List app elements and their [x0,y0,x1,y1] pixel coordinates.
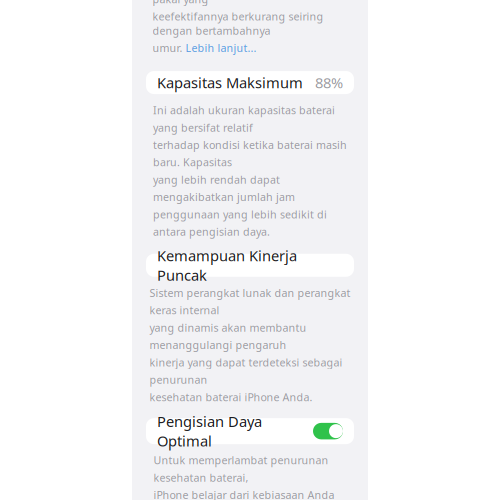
staticText: keefektifannya berkurang seiring dengan … [152,9,323,38]
staticText: Pengisian Daya Optimal [157,412,262,451]
staticText: Kapasitas Maksimum [157,73,303,92]
staticText: diisi ulang, adalah komponen habis pakai… [152,0,336,6]
staticText: Ini adalah ukuran kapasitas baterai yang… [153,103,347,239]
staticText: Kemampuan Kinerja Puncak [157,246,297,285]
staticText: Lebih lanjut... [185,41,256,55]
staticText: 88% [315,73,343,92]
button[interactable]: Lebih lanjut... [185,41,256,55]
staticText: umur. [152,41,182,55]
staticText: Untuk memperlambat penurunan kesehatan b… [153,453,346,500]
staticText: Sistem perangkat lunak dan perangkat ker… [149,286,350,404]
